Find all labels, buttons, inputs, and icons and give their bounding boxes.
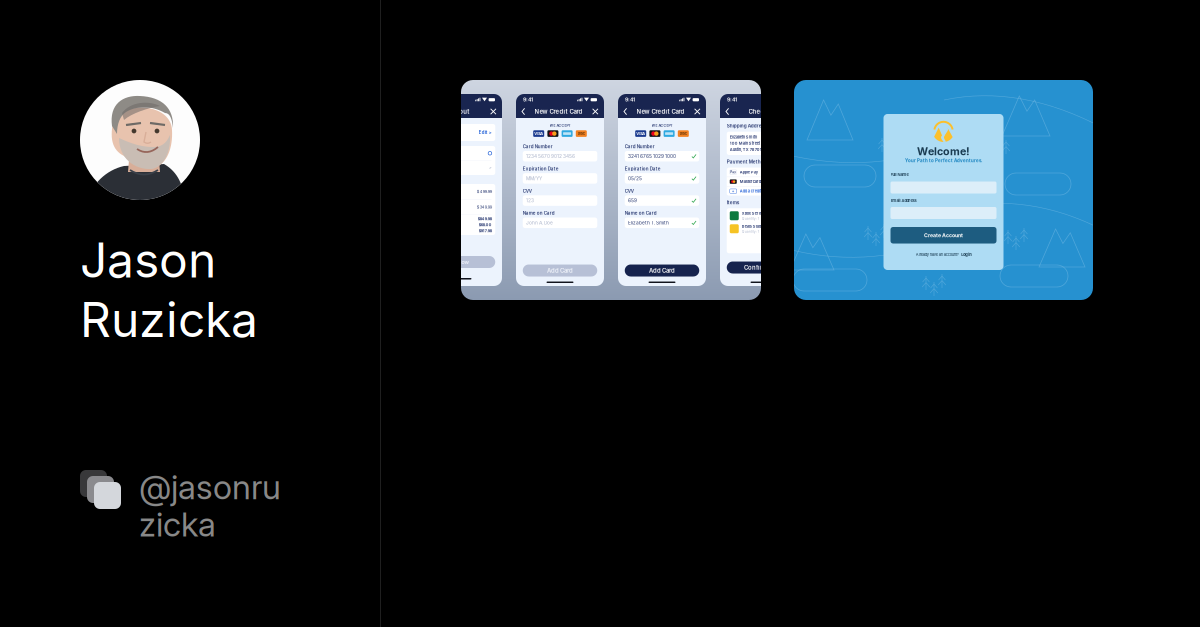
staticText: zicka [139,504,216,545]
staticText: 100 Main Street [730,141,760,146]
staticText: $917.98 [479,229,492,233]
staticText: $849.98 [478,217,492,221]
staticText: CVV [625,188,634,194]
staticText: $499.99 [477,189,492,194]
staticText: John A. Doe [526,220,553,226]
staticText: @jasonru [139,467,281,507]
staticText: $68.00 [479,223,492,227]
staticText: Jason [80,231,216,289]
staticText: Quantity: 1 [742,216,759,220]
staticText: 9:41 [625,96,635,103]
staticText: New Credit Card [637,108,685,115]
staticText: 05/25 [628,175,642,181]
staticText: New Credit Card [535,108,583,115]
staticText: Xbox Series X [742,211,768,216]
staticText: Expiration Date [523,166,559,172]
staticText: Pay [730,170,736,174]
staticText: Already have an account? [916,252,959,257]
staticText: Payment Method [727,159,767,165]
staticText: Beats Studio [742,224,764,229]
staticText: WE ACCEPT [549,123,570,128]
staticText: Your Path to Perfect Adventures. [905,158,982,163]
staticText: Name on Card [625,210,657,216]
staticText: Edit > [479,130,492,135]
staticText: Card Number [523,144,553,149]
staticText: Ruzicka [80,291,258,349]
staticText: 9:41 [727,96,737,103]
staticText: $349.99 [477,205,492,209]
staticText: Add Card [547,267,573,274]
staticText: Items [727,200,740,205]
staticText: Elizabeth T. Smith [628,220,669,226]
staticText: Elizabeth Smith [730,135,757,139]
staticText: Name on Card [523,210,555,216]
staticText: Checkout [749,108,777,115]
staticText: Pay Now [447,259,468,265]
staticText: Card Number [625,144,655,149]
staticText: 123 [526,198,534,203]
staticText: 9:41 [523,96,533,103]
staticText: VISA [636,131,645,136]
staticText: 1234 5670 9012 3456 [526,153,575,159]
staticText: Mastercard [740,179,761,184]
staticText: Confirm Order [744,264,784,271]
staticText: VISA [534,131,543,136]
button[interactable]: 9:41 [461,80,761,300]
staticText: Shipping Address [727,123,768,129]
staticText: Add Card [649,267,675,274]
staticText: MM/YY [526,175,542,181]
staticText: Apple Pay [740,170,758,174]
staticText: DISC [680,132,687,136]
staticText: Create Account [924,232,963,238]
staticText: Quantity: 1 [742,229,759,233]
staticText: Checkout [441,108,469,115]
staticText: Welcome! [917,145,970,158]
button[interactable]: @jasonru [80,467,281,545]
staticText: Austin, TX 78701 [730,147,762,152]
staticText: 659 [628,198,637,203]
staticText: > [489,165,492,171]
staticText: DISC [578,132,585,136]
staticText: Add a credit card [740,189,770,193]
staticText: + [732,189,735,193]
staticText: WE ACCEPT [651,123,672,128]
button[interactable]: Welcome! [794,80,1093,300]
staticText: Email Address [890,198,916,203]
staticText: 3241 6765 1029 1000 [628,153,676,159]
staticText: Login [961,252,971,257]
staticText: Full Name [890,172,908,177]
staticText: Expiration Date [625,166,661,172]
staticText: CVV [523,188,532,194]
